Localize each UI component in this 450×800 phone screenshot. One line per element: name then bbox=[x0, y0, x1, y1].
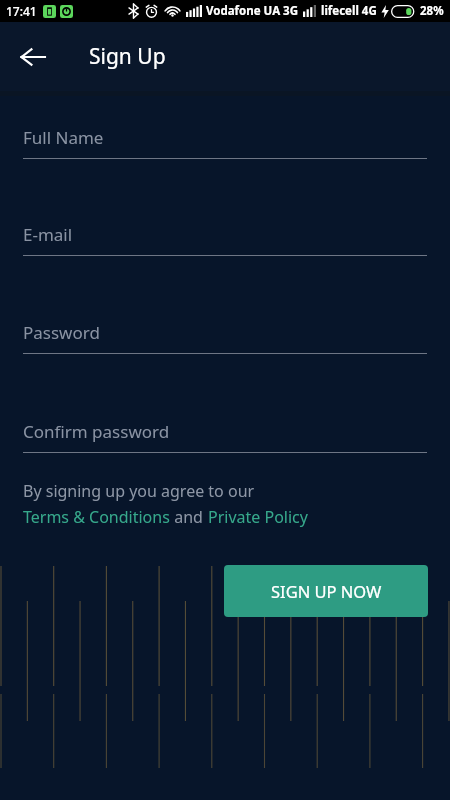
button[interactable]: Back bbox=[9, 33, 57, 81]
staticText: SIGN UP NOW bbox=[271, 580, 382, 602]
staticText: Terms & Conditions bbox=[23, 506, 170, 528]
button[interactable]: Confirm password bbox=[23, 420, 427, 453]
staticText: Private Policy bbox=[208, 506, 308, 528]
staticText: 28% bbox=[420, 3, 444, 19]
button[interactable]: Full Name bbox=[23, 126, 427, 159]
button[interactable]: Private Policy bbox=[208, 506, 308, 528]
staticText: Full Name bbox=[23, 126, 104, 149]
button[interactable]: Password bbox=[23, 321, 427, 354]
staticText: Sign Up bbox=[89, 42, 166, 71]
staticText: 17:41 bbox=[6, 3, 37, 19]
staticText: and bbox=[170, 506, 208, 528]
staticText: lifecell 4G bbox=[321, 3, 377, 19]
staticText: By signing up you agree to our bbox=[23, 480, 255, 502]
staticText: Confirm password bbox=[23, 420, 170, 443]
button[interactable]: SIGN UP NOW bbox=[224, 565, 428, 617]
button[interactable]: E-mail bbox=[23, 223, 427, 256]
button[interactable]: Terms & Conditions bbox=[23, 506, 170, 528]
staticText: Password bbox=[23, 321, 100, 344]
staticText: Vodafone UA 3G bbox=[206, 3, 298, 19]
staticText: E-mail bbox=[23, 223, 73, 246]
